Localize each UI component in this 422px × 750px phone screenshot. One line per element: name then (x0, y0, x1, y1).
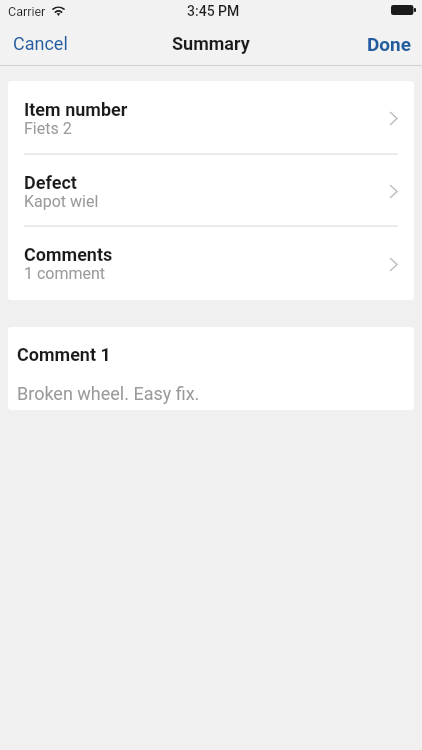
other: Wi-Fi (53, 6, 64, 16)
other: Battery full (391, 5, 416, 15)
button[interactable]: Comments (8, 227, 414, 300)
staticText: Defect (24, 172, 77, 193)
staticText: 3:45 PM (187, 3, 240, 19)
staticText: Done (367, 33, 412, 55)
button[interactable]: Cancel (0, 23, 81, 64)
staticText: 1 comment (24, 264, 106, 283)
staticText: Fiets 2 (24, 119, 72, 138)
staticText: Comments (24, 244, 113, 265)
button[interactable]: Comment 1 (8, 327, 414, 410)
staticText: Broken wheel. Easy fix. (17, 383, 200, 404)
staticText: Item number (24, 99, 128, 120)
button[interactable]: Defect (8, 155, 414, 225)
button[interactable]: Done (355, 23, 422, 64)
staticText: Kapot wiel (24, 192, 99, 211)
staticText: Cancel (13, 33, 68, 54)
staticText: Carrier (8, 4, 46, 19)
button[interactable]: Item number (8, 81, 414, 153)
other: Open Defect (389, 184, 398, 199)
other: Open Item number (389, 111, 398, 126)
staticText: Summary (172, 33, 250, 54)
other: Open Comments (389, 257, 398, 272)
staticText: Comment 1 (17, 344, 111, 365)
